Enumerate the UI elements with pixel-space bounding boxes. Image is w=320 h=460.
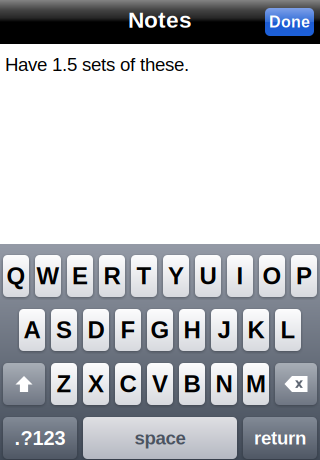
button[interactable]: M [243, 363, 269, 405]
button[interactable]: V [147, 363, 173, 405]
staticText: Have 1.5 sets of these. [5, 54, 189, 75]
staticText: .?123 [14, 427, 65, 449]
staticText: S [56, 317, 72, 343]
button[interactable]: Done [265, 8, 314, 36]
button[interactable]: Q [3, 255, 29, 297]
button[interactable]: I [227, 255, 253, 297]
button[interactable]: space [83, 417, 237, 459]
button[interactable]: Z [51, 363, 77, 405]
button[interactable]: O [259, 255, 285, 297]
staticText: A [23, 317, 40, 343]
button[interactable]: T [131, 255, 157, 297]
staticText: K [247, 317, 264, 343]
button[interactable]: .?123 [3, 417, 77, 459]
button[interactable]: L [275, 309, 301, 351]
button[interactable]: X [83, 363, 109, 405]
button[interactable]: S [51, 309, 77, 351]
staticText: Done [269, 13, 310, 31]
button[interactable]: return [243, 417, 317, 459]
button[interactable]: N [211, 363, 237, 405]
button[interactable]: A [19, 309, 45, 351]
staticText: space [134, 428, 185, 448]
staticText: E [72, 263, 88, 289]
staticText: V [152, 371, 168, 397]
staticText: B [183, 371, 200, 397]
staticText: L [280, 317, 295, 343]
staticText: X [88, 371, 104, 397]
button[interactable]: Y [163, 255, 189, 297]
staticText: U [199, 263, 216, 289]
staticText: G [150, 317, 169, 343]
staticText: return [254, 428, 306, 448]
staticText: H [183, 317, 200, 343]
button[interactable]: P [291, 255, 317, 297]
button[interactable]: K [243, 309, 269, 351]
staticText: W [36, 263, 59, 289]
staticText: M [246, 371, 266, 397]
button[interactable]: G [147, 309, 173, 351]
button[interactable]: Delete [275, 363, 317, 405]
staticText: I [236, 263, 243, 289]
staticText: Notes [128, 7, 192, 33]
button[interactable]: B [179, 363, 205, 405]
staticText: Y [168, 263, 184, 289]
button[interactable]: U [195, 255, 221, 297]
staticText: Q [6, 263, 25, 289]
staticText: F [120, 317, 135, 343]
staticText: Z [56, 371, 71, 397]
button[interactable]: C [115, 363, 141, 405]
staticText: T [136, 263, 151, 289]
button[interactable]: F [115, 309, 141, 351]
button[interactable]: D [83, 309, 109, 351]
button[interactable]: J [211, 309, 237, 351]
staticText: O [262, 263, 281, 289]
button[interactable]: Shift [3, 363, 45, 405]
button[interactable]: H [179, 309, 205, 351]
staticText: D [87, 317, 104, 343]
staticText: N [215, 371, 232, 397]
button[interactable]: W [35, 255, 61, 297]
staticText: P [296, 263, 312, 289]
staticText: R [103, 263, 120, 289]
staticText: J [217, 317, 230, 343]
staticText: C [119, 371, 136, 397]
button[interactable]: R [99, 255, 125, 297]
button[interactable]: E [67, 255, 93, 297]
